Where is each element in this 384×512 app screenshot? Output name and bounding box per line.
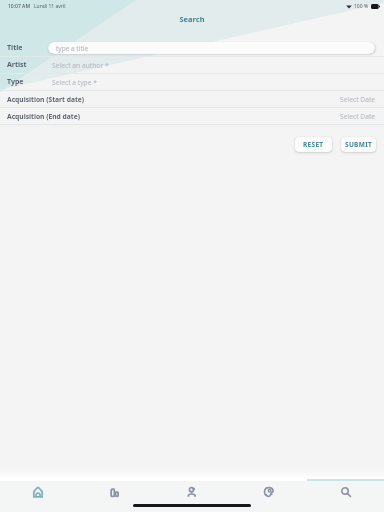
staticText: 100 % [354, 3, 369, 10]
staticText: Select Date [340, 95, 376, 104]
button[interactable]: type a title [48, 42, 375, 54]
staticText: SUBMIT [345, 140, 373, 149]
staticText: type a title [56, 44, 89, 53]
button[interactable]: Artworks [230, 481, 307, 503]
staticText: Artist [7, 60, 27, 70]
button[interactable]: Artist [0, 57, 384, 73]
staticText: Select Date [340, 112, 376, 121]
staticText: Title [7, 43, 23, 53]
button[interactable]: Museums [76, 481, 153, 503]
button[interactable]: Home [0, 481, 76, 503]
button[interactable]: Acquisition (End date) [0, 108, 384, 124]
staticText: Lundi 11 avril [34, 3, 66, 10]
staticText: Acquisition (Start date) [7, 95, 85, 104]
button[interactable]: Artists [153, 481, 230, 503]
button[interactable]: SUBMIT [341, 137, 376, 152]
staticText: Select a type * [52, 78, 97, 87]
staticText: Select an author * [52, 61, 109, 70]
staticText: RESET [303, 140, 324, 149]
button[interactable]: Type [0, 74, 384, 90]
button[interactable]: Acquisition (Start date) [0, 91, 384, 107]
staticText: Acquisition (End date) [7, 112, 80, 121]
staticText: Type [7, 77, 24, 87]
button[interactable]: Search [307, 481, 384, 503]
staticText: Search [0, 14, 384, 24]
button[interactable]: RESET [295, 137, 332, 152]
staticText: 10:07 AM [8, 3, 30, 10]
